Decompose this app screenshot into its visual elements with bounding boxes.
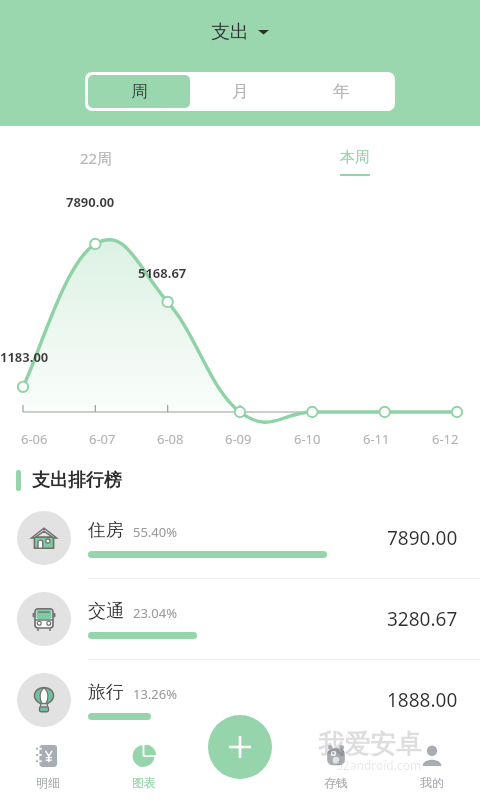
button[interactable]: 本周 <box>330 144 380 180</box>
button[interactable]: 22周 <box>70 144 123 172</box>
staticText: 6-08 <box>157 430 184 448</box>
staticText: 月 <box>232 81 249 102</box>
staticText: 6-09 <box>225 430 252 448</box>
staticText: 支出 <box>211 20 249 44</box>
staticText: 6-11 <box>363 430 390 448</box>
staticText: 1888.00 <box>387 687 458 713</box>
button[interactable]: 明细 <box>0 734 96 800</box>
button[interactable]: 周 <box>88 75 190 108</box>
staticText: 7890.00 <box>66 193 115 211</box>
staticText: 旅行 <box>88 681 124 704</box>
staticText: 7890.00 <box>387 525 458 551</box>
staticText: 年 <box>333 81 350 102</box>
button[interactable]: 旅行 <box>0 660 480 740</box>
staticText: 图表 <box>132 775 156 790</box>
staticText: 6-12 <box>432 430 459 448</box>
staticText: 23.04% <box>133 604 178 622</box>
staticText: 交通 <box>88 600 124 623</box>
button[interactable]: 月 <box>190 75 291 108</box>
staticText: 我爱安卓 <box>318 728 422 761</box>
staticText: 6-07 <box>89 430 116 448</box>
button[interactable]: 图表 <box>96 734 192 800</box>
staticText: 13.26% <box>133 685 178 703</box>
staticText: 22周 <box>80 148 113 168</box>
button[interactable]: 支出 <box>205 18 275 46</box>
staticText: 6-06 <box>21 430 48 448</box>
button[interactable]: 交通 <box>0 579 480 659</box>
button[interactable]: 存钱 <box>288 734 384 800</box>
staticText: 本周 <box>340 148 370 167</box>
staticText: 住房 <box>88 519 124 542</box>
staticText: 明细 <box>36 775 60 790</box>
staticText: 55.40% <box>133 523 178 541</box>
button[interactable]: 住房 <box>0 498 480 578</box>
staticText: 3280.67 <box>387 606 458 632</box>
staticText: 我的 <box>420 775 444 790</box>
staticText: 存钱 <box>324 775 348 790</box>
staticText: 6-10 <box>294 430 321 448</box>
staticText: 5168.67 <box>138 264 187 282</box>
button[interactable]: 年 <box>291 75 392 108</box>
staticText: 1183.00 <box>0 348 49 366</box>
staticText: 支出排行榜 <box>32 469 122 492</box>
button[interactable]: 我的 <box>384 734 480 800</box>
staticText: 周 <box>131 81 148 102</box>
button[interactable]: Add record <box>208 715 272 779</box>
staticText: 52android.com <box>336 757 422 773</box>
